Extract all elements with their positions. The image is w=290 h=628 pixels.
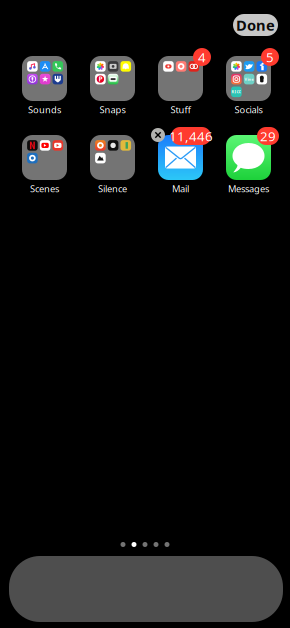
staticText: Vine xyxy=(245,76,254,82)
button[interactable]: Sounds xyxy=(22,56,67,116)
button[interactable]: 4 xyxy=(158,56,203,116)
staticText: Messages xyxy=(228,182,269,195)
staticText: Done xyxy=(236,15,275,35)
button[interactable]: 29 xyxy=(226,135,271,195)
button[interactable]: 11,446 xyxy=(158,135,203,195)
staticText: Socials xyxy=(234,103,262,116)
staticText: Scenes xyxy=(30,182,59,195)
staticText: P xyxy=(98,74,102,83)
staticText: 11,446 xyxy=(169,127,213,145)
button[interactable]: Silence xyxy=(90,135,135,195)
button[interactable]: Vine xyxy=(226,56,271,116)
staticText: Sounds xyxy=(28,103,61,116)
button[interactable]: Scenes xyxy=(22,135,67,195)
staticText: Snaps xyxy=(99,103,125,116)
button[interactable]: P xyxy=(90,56,135,116)
button[interactable]: Done xyxy=(233,14,278,36)
staticText: Mail xyxy=(172,182,189,195)
staticText: 4 xyxy=(198,48,206,66)
staticText: 5 xyxy=(266,48,274,66)
staticText: RICO xyxy=(231,89,241,94)
staticText: Silence xyxy=(98,182,127,195)
staticText: 29 xyxy=(260,127,276,145)
staticText: Stuff xyxy=(170,103,190,116)
